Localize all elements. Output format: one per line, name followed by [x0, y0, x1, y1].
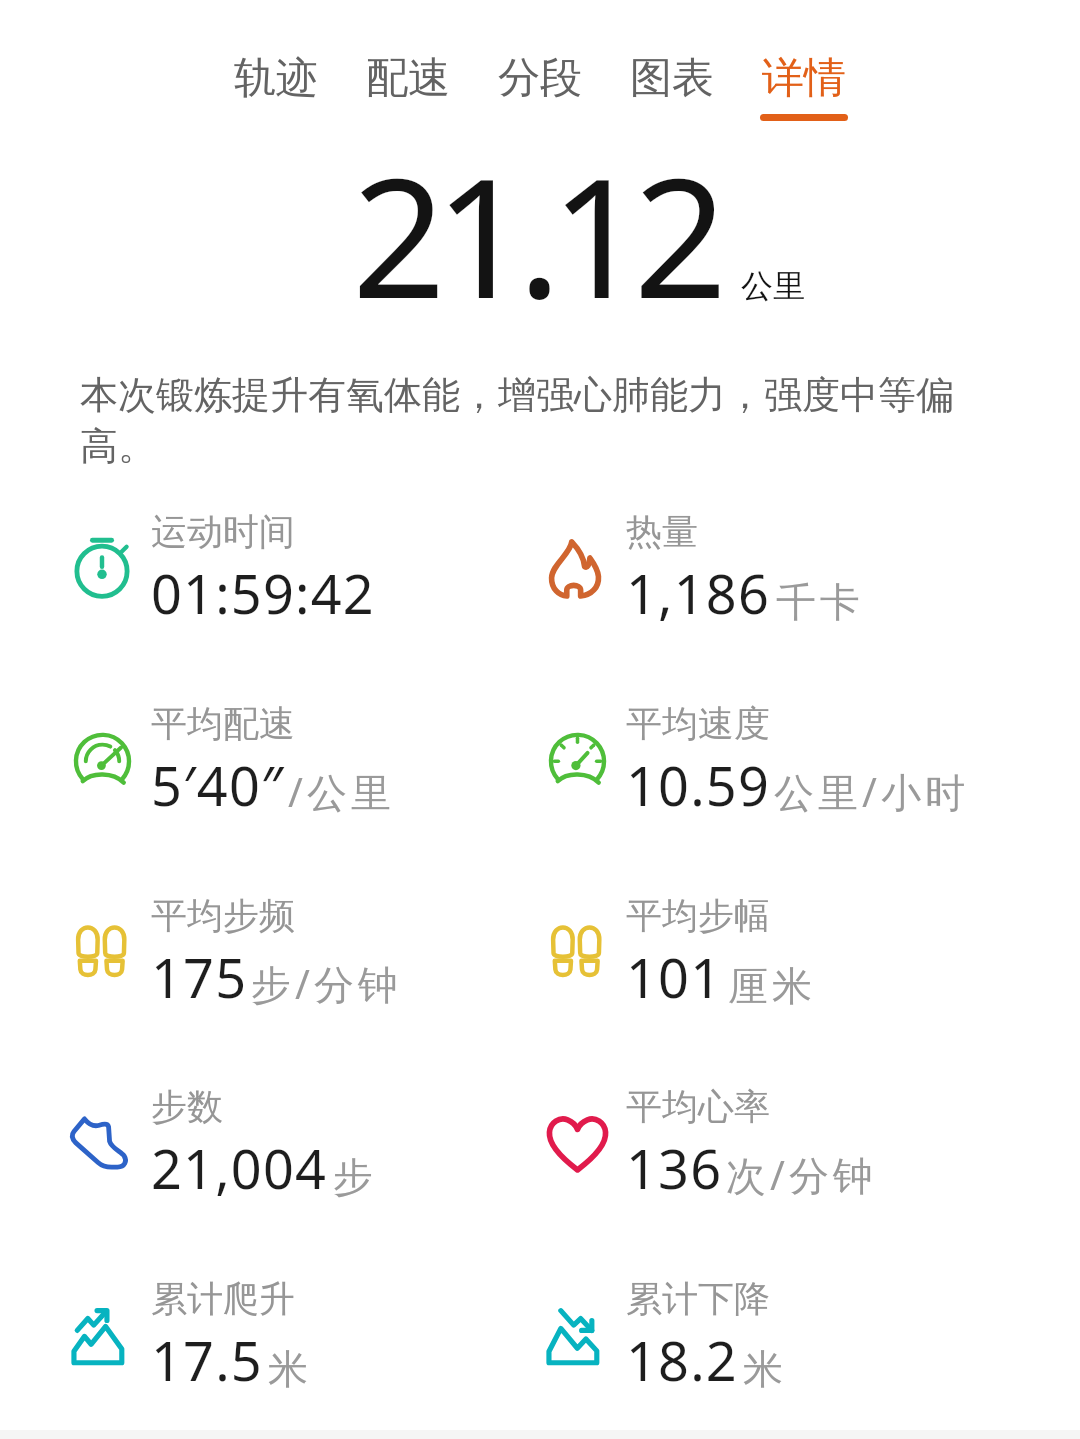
- button[interactable]: 配速: [342, 52, 474, 148]
- button[interactable]: 轨迹: [210, 52, 342, 148]
- button[interactable]: Heart rate: [540, 1079, 1080, 1203]
- button[interactable]: Total ascent: [0, 1271, 540, 1395]
- staticText: 5′40″: [151, 748, 285, 822]
- staticText: 配速: [366, 52, 450, 105]
- button[interactable]: Steps: [0, 888, 540, 1012]
- other: Step count: [69, 1108, 135, 1174]
- staticText: 米: [741, 1344, 785, 1394]
- staticText: 分段: [498, 52, 582, 105]
- staticText: 平均速度: [626, 701, 770, 746]
- other: Calories: [544, 533, 610, 599]
- staticText: 详情: [762, 52, 846, 105]
- staticText: 10.59: [626, 748, 771, 822]
- staticText: 运动时间: [151, 509, 295, 554]
- button[interactable]: Calories: [540, 504, 1080, 628]
- staticText: 热量: [626, 509, 698, 554]
- staticText: 平均心率: [626, 1084, 770, 1129]
- staticText: 厘米: [726, 961, 814, 1011]
- other: Steps: [71, 919, 133, 981]
- staticText: 公里: [741, 266, 805, 306]
- staticText: 累计下降: [626, 1276, 770, 1321]
- staticText: 次/分钟: [726, 1147, 877, 1202]
- button[interactable]: Step count: [0, 1079, 540, 1203]
- staticText: 18.2: [626, 1323, 738, 1397]
- button[interactable]: Duration: [0, 504, 540, 628]
- other: Total ascent: [69, 1305, 135, 1371]
- staticText: 平均配速: [151, 701, 295, 746]
- staticText: 千卡: [774, 577, 862, 627]
- other: Heart rate: [542, 1106, 613, 1177]
- staticText: 平均步频: [151, 893, 295, 938]
- staticText: 步数: [151, 1084, 223, 1129]
- button[interactable]: Total descent: [540, 1271, 1080, 1395]
- other: Average speed: [547, 733, 608, 794]
- button[interactable]: 分段: [474, 52, 606, 148]
- button[interactable]: Average speed: [540, 696, 1080, 820]
- staticText: 1,186: [626, 556, 771, 630]
- staticText: 轨迹: [234, 52, 318, 105]
- staticText: 平均步幅: [626, 893, 770, 938]
- staticText: 01:59:42: [151, 556, 375, 630]
- other: Steps: [546, 919, 608, 981]
- other: Total descent: [544, 1305, 610, 1371]
- button[interactable]: 详情: [738, 52, 870, 148]
- staticText: 175: [151, 940, 248, 1014]
- staticText: 步: [331, 1152, 375, 1202]
- staticText: 21,004: [151, 1131, 328, 1205]
- staticText: /公里: [288, 764, 395, 819]
- staticText: 本次锻炼提升有氧体能，增强心肺能力，强度中等偏高。: [80, 371, 970, 470]
- other: Duration: [71, 535, 133, 597]
- staticText: 101: [626, 940, 723, 1014]
- staticText: 累计爬升: [151, 1276, 295, 1321]
- button[interactable]: Average pace: [0, 696, 540, 820]
- staticText: 17.5: [151, 1323, 263, 1397]
- staticText: 21.12: [352, 123, 717, 346]
- staticText: 136: [626, 1131, 723, 1205]
- other: Average pace: [72, 733, 133, 794]
- staticText: 米: [266, 1344, 310, 1394]
- staticText: 图表: [630, 52, 714, 105]
- button[interactable]: Steps: [540, 888, 1080, 1012]
- staticText: 步/分钟: [251, 956, 402, 1011]
- staticText: 公里/小时: [774, 764, 969, 819]
- button[interactable]: 图表: [606, 52, 738, 148]
